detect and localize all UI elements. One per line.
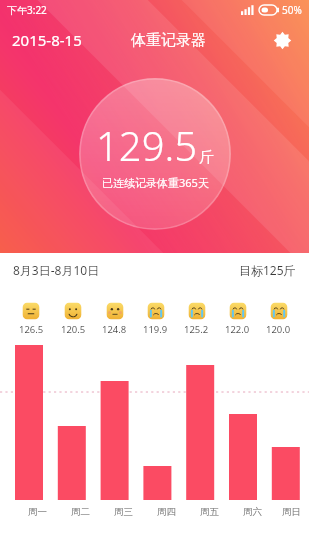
staticText: 下午3:22 <box>7 3 47 17</box>
staticText: 周五 <box>200 506 219 518</box>
staticText: 126.5 <box>19 323 44 336</box>
staticText: 125.2 <box>184 323 209 336</box>
staticText: 周日 <box>282 506 301 518</box>
staticText: 周六 <box>243 506 262 518</box>
staticText: 周二 <box>71 506 90 518</box>
button[interactable]: 129.5 <box>79 78 231 230</box>
button[interactable]: Settings <box>267 25 297 55</box>
staticText: 120.5 <box>61 323 86 336</box>
staticText: 122.0 <box>225 323 250 336</box>
staticText: 119.9 <box>143 323 168 336</box>
staticText: 已连续记录体重365天 <box>102 175 209 190</box>
staticText: 周一 <box>28 506 47 518</box>
staticText: 124.8 <box>102 323 127 336</box>
staticText: 8月3日-8月10日 <box>13 262 100 278</box>
staticText: 目标125斤 <box>239 262 296 278</box>
staticText: 120.0 <box>266 323 291 336</box>
staticText: 2015-8-15 <box>12 30 82 50</box>
staticText: 50% <box>282 3 302 17</box>
staticText: 斤 <box>199 148 214 167</box>
staticText: 周三 <box>114 506 133 518</box>
staticText: 体重记录器 <box>131 31 206 50</box>
staticText: 周四 <box>157 506 176 518</box>
staticText: 129.5 <box>96 118 198 172</box>
